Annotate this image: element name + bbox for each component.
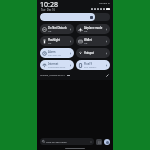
staticText: Wallet <box>84 38 92 42</box>
staticText: 10:28 <box>40 0 58 10</box>
staticText: Connection Error <box>48 66 66 69</box>
staticText: Tue, Dec 16 <box>41 8 55 11</box>
staticText: Google Fi <box>99 1 110 4</box>
staticText: Flashlight <box>48 38 61 42</box>
staticText: Pixel 9 <box>84 62 92 66</box>
button[interactable]: Brightness <box>40 13 110 21</box>
staticText: Off <box>48 30 52 33</box>
button[interactable]: Internet <box>40 60 74 70</box>
button[interactable]: Alarm <box>40 48 74 58</box>
button[interactable]: Hotspot <box>76 48 110 58</box>
staticText: Internet <box>48 62 59 66</box>
button[interactable]: Do Not Disturb <box>40 24 74 34</box>
staticText: Off <box>84 42 88 45</box>
staticText: Verified_240206.042.C1 <box>40 74 65 77</box>
staticText: Off <box>48 42 52 45</box>
staticText: Sun 9:00 AM <box>48 54 61 57</box>
staticText: Type an app name <box>46 140 90 143</box>
staticText: 45% battery <box>84 66 97 69</box>
staticText: Off <box>84 30 88 33</box>
button[interactable]: Flashlight <box>40 36 74 46</box>
staticText: Hotspot <box>84 51 94 55</box>
button[interactable]: Wallet <box>76 36 110 46</box>
button[interactable]: Apps <box>96 139 102 145</box>
button[interactable]: Pixel 9 <box>76 60 110 70</box>
button[interactable]: Profile <box>104 139 110 145</box>
button[interactable]: Edit tiles <box>105 73 110 78</box>
staticText: Do Not Disturb <box>48 26 67 30</box>
button[interactable]: Airplane mode <box>76 24 110 34</box>
button[interactable]: Type an app name <box>40 138 94 145</box>
staticText: Airplane mode <box>84 26 103 30</box>
staticText: Alarm <box>48 50 56 54</box>
